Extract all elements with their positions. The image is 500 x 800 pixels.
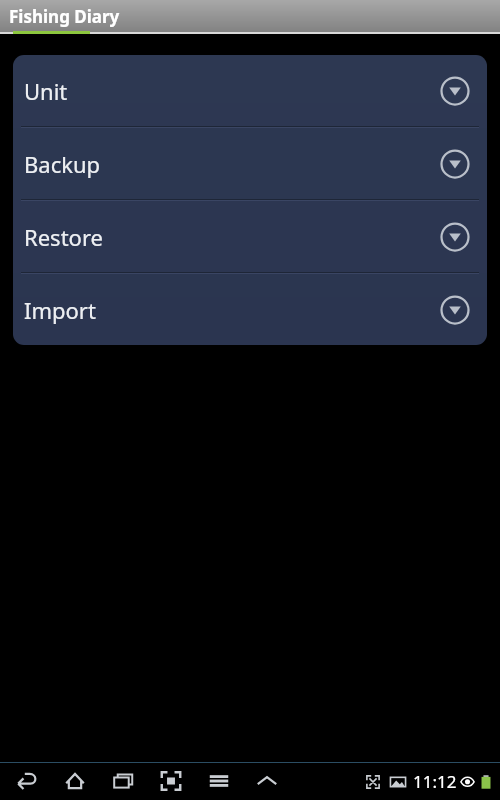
button[interactable]: Home bbox=[58, 764, 92, 798]
staticText: Fishing Diary bbox=[9, 5, 120, 28]
button[interactable]: Restore bbox=[13, 201, 487, 272]
button[interactable]: Backup bbox=[13, 128, 487, 199]
staticText: 11:12 bbox=[413, 770, 457, 793]
staticText: Backup bbox=[24, 149, 440, 179]
staticText: Restore bbox=[24, 222, 440, 252]
staticText: Import bbox=[24, 295, 440, 325]
other: Expand bbox=[440, 149, 470, 179]
button[interactable]: Hide bbox=[250, 764, 284, 798]
button[interactable]: Screenshot bbox=[154, 764, 188, 798]
button[interactable]: Menu bbox=[202, 764, 236, 798]
button[interactable]: Back bbox=[10, 764, 44, 798]
staticText: Unit bbox=[24, 76, 440, 106]
button[interactable]: Recent apps bbox=[106, 764, 140, 798]
button[interactable]: Import bbox=[13, 274, 487, 345]
other: Expand bbox=[440, 76, 470, 106]
other: Expand bbox=[440, 222, 470, 252]
button[interactable]: Unit bbox=[13, 55, 487, 126]
other: Expand bbox=[440, 295, 470, 325]
